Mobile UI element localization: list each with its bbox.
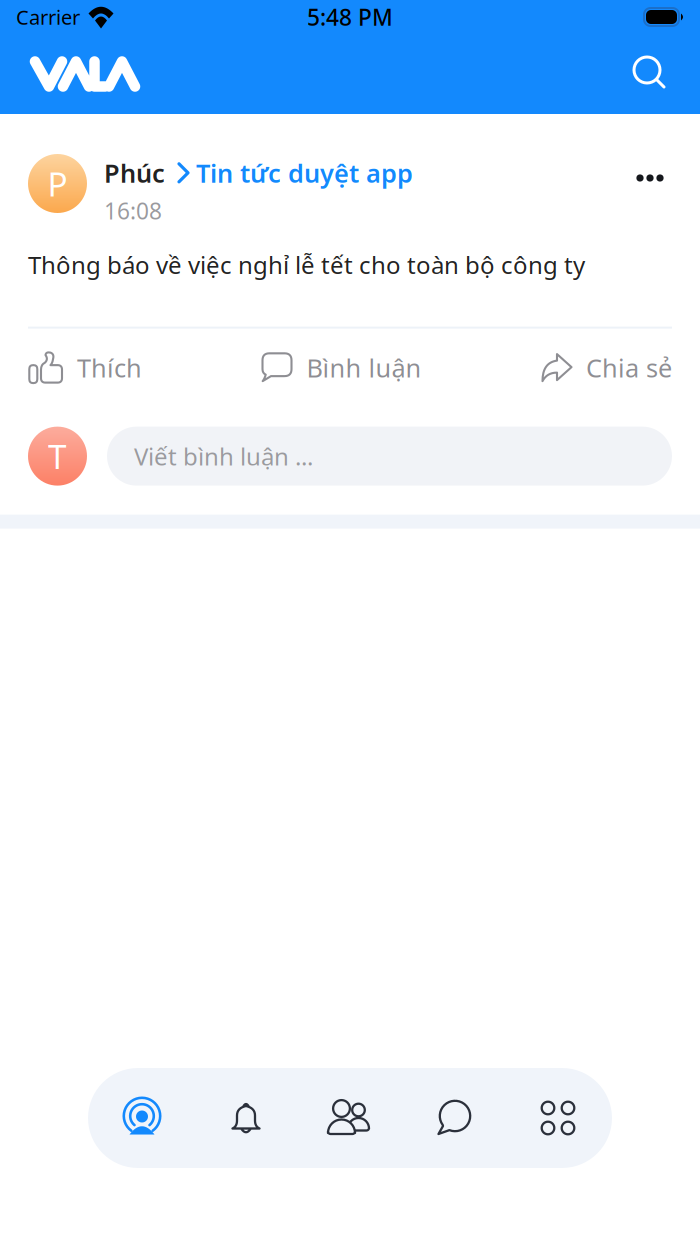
- staticText: P: [47, 161, 67, 206]
- button[interactable]: Contacts: [298, 1068, 402, 1168]
- button[interactable]: Feed: [90, 1068, 194, 1168]
- staticText: Thích: [77, 351, 142, 384]
- button[interactable]: More options: [628, 160, 672, 196]
- staticText: Carrier: [16, 4, 80, 30]
- button[interactable]: Notifications: [194, 1068, 298, 1168]
- staticText: 5:48 PM: [307, 2, 393, 32]
- button[interactable]: Search: [625, 49, 675, 99]
- button[interactable]: More: [506, 1068, 610, 1168]
- button[interactable]: Messages: [402, 1068, 506, 1168]
- staticText: Viết bình luận ...: [134, 440, 313, 472]
- button[interactable]: Chia sẻ: [541, 351, 672, 384]
- staticText: Phúc: [104, 156, 165, 190]
- staticText: 16:08: [104, 196, 162, 226]
- button[interactable]: Bình luận: [261, 351, 421, 384]
- staticText: T: [48, 434, 67, 478]
- staticText: Chia sẻ: [586, 351, 672, 384]
- staticText: Tin tức duyệt app: [196, 156, 413, 190]
- button[interactable]: Thích: [28, 351, 142, 385]
- staticText: Bình luận: [306, 351, 421, 384]
- button[interactable]: Viết bình luận ...: [107, 427, 672, 486]
- staticText: Thông báo về việc nghỉ lễ tết cho toàn b…: [28, 249, 585, 281]
